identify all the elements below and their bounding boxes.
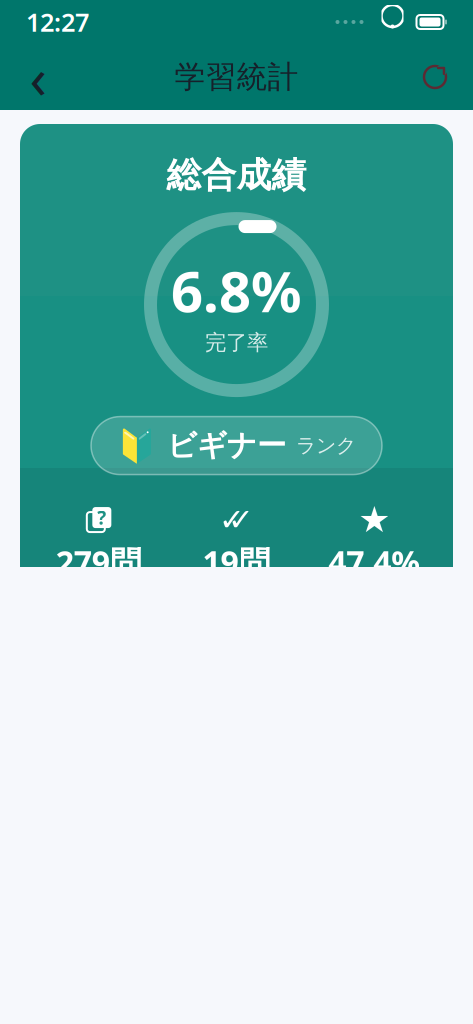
button[interactable]: 戻る [14,53,62,101]
staticText: 279問 [56,541,142,583]
staticText: 47.4% [328,541,420,583]
staticText: ★ [358,499,390,540]
staticText: 完了率 [205,330,268,356]
staticText: ビギナー [167,428,286,464]
staticText: 学習統計 [174,58,298,96]
staticText: 19問 [202,541,270,583]
staticText: ? [97,505,106,530]
staticText: 🔰 [117,427,157,464]
button[interactable]: 更新 [411,53,459,101]
staticText: 総合成績 [166,154,306,197]
staticText: 12:27 [26,5,89,39]
staticText: 6.8% [171,253,302,328]
staticText: ランク [296,433,356,458]
staticText: ‹ [29,40,46,114]
staticText: ✓ [228,502,254,537]
staticText: ✓ [219,502,245,537]
